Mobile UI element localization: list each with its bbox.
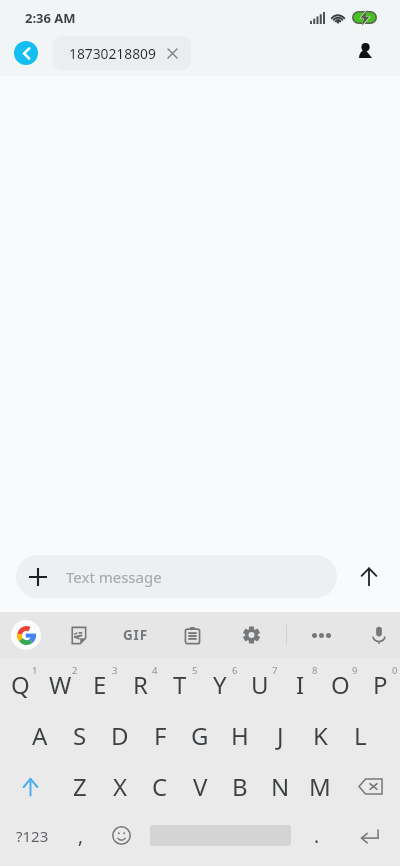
staticText: 8 <box>312 664 318 677</box>
button[interactable]: R <box>120 658 160 710</box>
staticText: V <box>193 770 208 803</box>
button[interactable]: More options <box>298 612 344 658</box>
staticText: 6 <box>232 664 238 677</box>
staticText: L <box>354 719 367 752</box>
button[interactable]: G <box>180 710 220 761</box>
button[interactable]: T <box>160 658 200 710</box>
button[interactable]: P <box>360 658 400 710</box>
staticText: N <box>271 770 290 803</box>
button[interactable]: S <box>60 710 100 761</box>
button[interactable]: Contact details <box>346 31 384 69</box>
staticText: Z <box>73 770 87 803</box>
button[interactable]: N <box>260 761 300 812</box>
staticText: W <box>49 668 72 701</box>
staticText: U <box>251 668 269 701</box>
staticText: K <box>313 719 328 752</box>
button[interactable]: Emoji <box>101 812 141 859</box>
staticText: . <box>314 823 320 849</box>
button[interactable]: Enter <box>338 812 400 859</box>
button[interactable]: U <box>240 658 280 710</box>
button[interactable]: K <box>300 710 340 761</box>
staticText: B <box>232 770 248 803</box>
staticText: M <box>309 770 331 803</box>
staticText: 9 <box>352 664 358 677</box>
staticText: Q <box>11 668 30 701</box>
button[interactable]: L <box>340 710 380 761</box>
staticText: GIF <box>123 626 148 644</box>
button[interactable]: Stickers <box>55 612 101 658</box>
button[interactable]: Shift <box>0 761 60 812</box>
button[interactable]: M <box>300 761 340 812</box>
staticText: E <box>93 668 107 701</box>
button[interactable]: D <box>100 710 140 761</box>
button[interactable]: E <box>80 658 120 710</box>
button[interactable]: X <box>100 761 140 812</box>
button[interactable]: Back <box>14 41 38 65</box>
button[interactable]: , <box>61 812 101 859</box>
button[interactable]: W <box>40 658 80 710</box>
staticText: 2 <box>72 664 78 677</box>
button[interactable]: 18730218809 <box>53 36 191 70</box>
button[interactable]: J <box>260 710 300 761</box>
staticText: F <box>154 719 167 752</box>
button[interactable]: F <box>140 710 180 761</box>
button[interactable]: H <box>220 710 260 761</box>
staticText: T <box>173 668 187 701</box>
button[interactable]: Send <box>337 555 400 598</box>
button[interactable]: Google search <box>3 612 49 658</box>
staticText: 5 <box>192 664 198 677</box>
staticText: Text message <box>66 567 162 587</box>
button[interactable]: B <box>220 761 260 812</box>
staticText: S <box>73 719 87 752</box>
button[interactable]: O <box>320 658 360 710</box>
staticText: Y <box>213 668 227 701</box>
button[interactable]: C <box>140 761 180 812</box>
staticText: D <box>111 719 129 752</box>
staticText: P <box>373 668 388 701</box>
staticText: R <box>133 668 148 701</box>
button[interactable]: Backspace <box>340 761 400 812</box>
staticText: H <box>231 719 249 752</box>
staticText: C <box>152 770 168 803</box>
staticText: , <box>78 823 84 849</box>
staticText: X <box>113 770 128 803</box>
button[interactable]: Y <box>200 658 240 710</box>
button[interactable]: GIF <box>112 612 158 658</box>
staticText: 3 <box>112 664 118 677</box>
button[interactable]: Z <box>60 761 100 812</box>
button[interactable]: V <box>180 761 220 812</box>
staticText: 2:36 AM <box>25 9 76 27</box>
staticText: 1 <box>32 664 38 677</box>
button[interactable]: . <box>297 812 337 859</box>
staticText: 7 <box>272 664 278 677</box>
staticText: A <box>32 719 48 752</box>
button[interactable]: Settings <box>228 612 274 658</box>
button[interactable]: Q <box>0 658 40 710</box>
button[interactable]: A <box>20 710 60 761</box>
button[interactable]: Text message <box>16 555 337 598</box>
button[interactable]: ?123 <box>0 812 65 859</box>
button[interactable]: Clipboard <box>169 612 215 658</box>
staticText: 4 <box>152 664 158 677</box>
button[interactable]: Voice input <box>356 612 400 658</box>
staticText: J <box>277 719 284 752</box>
staticText: I <box>296 668 305 701</box>
button[interactable]: I <box>280 658 320 710</box>
staticText: 18730218809 <box>69 44 156 63</box>
staticText: 0 <box>392 664 398 677</box>
staticText: O <box>331 668 350 701</box>
staticText: G <box>191 719 209 752</box>
staticText: ?123 <box>16 826 49 846</box>
